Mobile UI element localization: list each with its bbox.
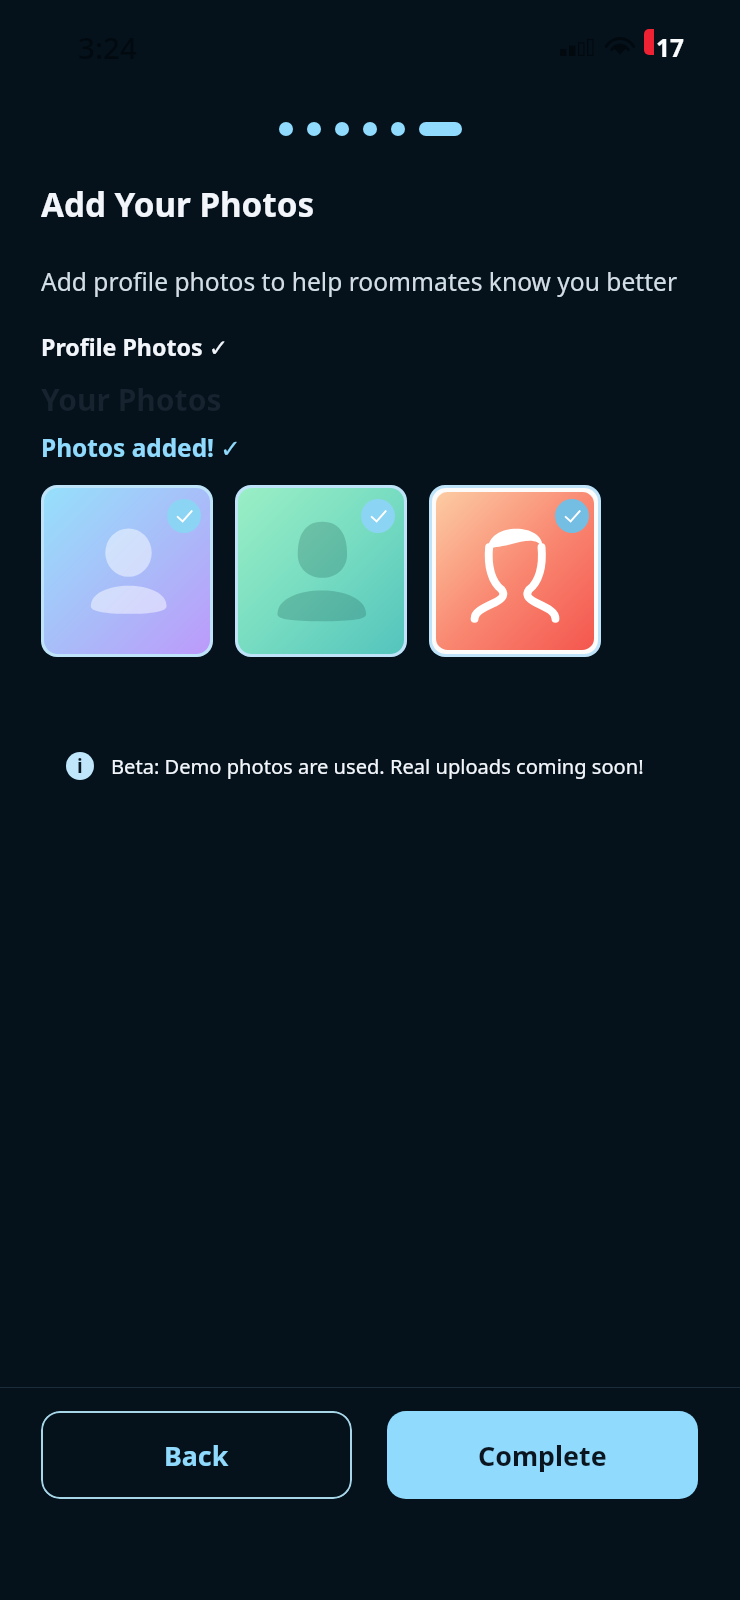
staticText: Your Photos bbox=[41, 379, 222, 420]
staticText: Photos added! ✓ bbox=[41, 431, 241, 464]
staticText: Complete bbox=[478, 1437, 607, 1474]
staticText: Add Your Photos bbox=[41, 182, 315, 227]
staticText: Back bbox=[164, 1437, 229, 1474]
staticText: Profile Photos ✓ bbox=[41, 331, 229, 363]
staticText: 3:24 bbox=[78, 27, 137, 67]
staticText: 17 bbox=[656, 31, 684, 64]
button[interactable]: Profile photo 2 bbox=[235, 485, 407, 657]
button[interactable]: Back bbox=[41, 1411, 352, 1499]
button[interactable]: Profile photo 1 bbox=[41, 485, 213, 657]
button[interactable]: Complete bbox=[387, 1411, 698, 1499]
button[interactable]: Profile photo 3 bbox=[429, 485, 601, 657]
staticText: Beta: Demo photos are used. Real uploads… bbox=[111, 753, 644, 780]
staticText: Add profile photos to help roommates kno… bbox=[41, 265, 678, 299]
staticText: i bbox=[77, 753, 83, 779]
